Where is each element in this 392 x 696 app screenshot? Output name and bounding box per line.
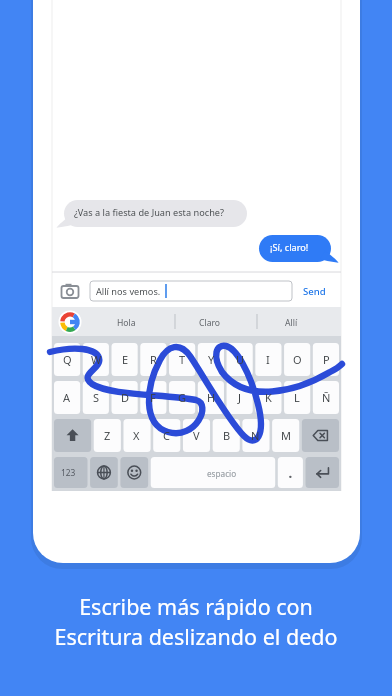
button[interactable]: D (112, 381, 138, 414)
button[interactable]: G (169, 381, 195, 414)
staticText: Allí nos vemos. (96, 285, 161, 298)
button[interactable]: Allí suggestion (259, 309, 339, 335)
staticText: T (179, 352, 186, 367)
button[interactable]: Z (94, 419, 121, 452)
staticText: espacio (207, 468, 237, 479)
staticText: I (266, 352, 270, 367)
button[interactable]: L (284, 381, 310, 414)
staticText: D (121, 390, 130, 405)
button[interactable]: H (198, 381, 224, 414)
staticText: 123 (61, 467, 76, 478)
button[interactable]: Change language (93, 457, 124, 488)
button[interactable]: Y (198, 343, 224, 376)
button[interactable]: O (284, 343, 310, 376)
button[interactable]: Send (298, 279, 342, 303)
staticText: L (294, 390, 300, 405)
button[interactable]: R (140, 343, 166, 376)
staticText: V (193, 428, 200, 443)
staticText: Q (63, 352, 72, 367)
staticText: H (207, 390, 216, 405)
staticText: Allí (285, 317, 298, 329)
staticText: B (223, 428, 231, 443)
button[interactable]: M (272, 419, 299, 452)
button[interactable]: P (313, 343, 339, 376)
staticText: W (91, 352, 102, 367)
button[interactable]: Message input (90, 280, 292, 302)
button[interactable]: U (227, 343, 253, 376)
staticText: ¿Vas a la fiesta de Juan esta noche? (74, 206, 224, 219)
button[interactable]: Emoji (126, 457, 157, 488)
button[interactable]: Google (58, 310, 84, 334)
staticText: Claro (199, 317, 221, 329)
staticText: F (150, 390, 156, 405)
staticText: G (178, 390, 187, 405)
staticText: Send (303, 285, 326, 298)
staticText: Hola (117, 317, 136, 329)
staticText: M (281, 428, 291, 443)
button[interactable]: Space (159, 457, 270, 488)
button[interactable]: N (242, 419, 269, 452)
button[interactable]: T (169, 343, 195, 376)
button[interactable]: Ñ (313, 381, 339, 414)
staticText: Escribe más rápido con Escritura desliza… (54, 592, 338, 651)
button[interactable]: S (83, 381, 109, 414)
button[interactable]: F (140, 381, 166, 414)
button[interactable]: Period (272, 457, 300, 488)
button[interactable]: K (255, 381, 281, 414)
button[interactable]: Shift (54, 419, 95, 452)
staticText: Ñ (322, 390, 331, 405)
staticText: A (63, 390, 71, 405)
staticText: Z (104, 428, 111, 443)
button[interactable]: I (255, 343, 281, 376)
staticText: K (265, 390, 272, 405)
button[interactable]: C (153, 419, 180, 452)
staticText: Y (208, 352, 215, 367)
button[interactable]: J (227, 381, 253, 414)
staticText: X (133, 428, 140, 443)
button[interactable]: Hola suggestion (96, 309, 174, 335)
staticText: ¡Sí, claro! (270, 241, 309, 254)
button[interactable]: Backspace (298, 419, 339, 452)
button[interactable]: W (83, 343, 109, 376)
button[interactable]: Numbers (54, 457, 91, 488)
staticText: S (93, 390, 100, 405)
staticText: P (323, 352, 330, 367)
staticText: N (251, 428, 260, 443)
button[interactable]: E (112, 343, 138, 376)
button[interactable]: Claro suggestion (177, 309, 256, 335)
button[interactable]: X (123, 419, 150, 452)
button[interactable]: Q (54, 343, 80, 376)
staticText: J (238, 390, 242, 405)
staticText: R (150, 352, 157, 367)
button[interactable]: Enter (302, 457, 339, 488)
button[interactable]: B (213, 419, 240, 452)
staticText: U (236, 352, 245, 367)
button[interactable]: V (183, 419, 210, 452)
staticText: O (293, 352, 302, 367)
staticText: E (122, 352, 129, 367)
button[interactable]: Camera (57, 281, 83, 301)
button[interactable]: A (54, 381, 80, 414)
staticText: C (163, 428, 170, 443)
